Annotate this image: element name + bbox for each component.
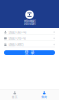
button[interactable]: 首页 bbox=[0, 90, 29, 100]
staticText: 请输入客户号 bbox=[8, 30, 26, 35]
button[interactable]: 我的 bbox=[29, 90, 59, 100]
staticText: 请输入用户名 bbox=[8, 36, 26, 41]
staticText: 首页 bbox=[12, 95, 18, 99]
staticText: 中国工商银行 bbox=[23, 19, 35, 23]
button[interactable]: 登 录 bbox=[4, 50, 55, 55]
staticText: 登 录 bbox=[24, 50, 34, 55]
staticText: 请输入密码 bbox=[8, 42, 23, 47]
staticText: 企业手机银行 bbox=[23, 22, 35, 25]
staticText: 我的 bbox=[41, 95, 47, 99]
